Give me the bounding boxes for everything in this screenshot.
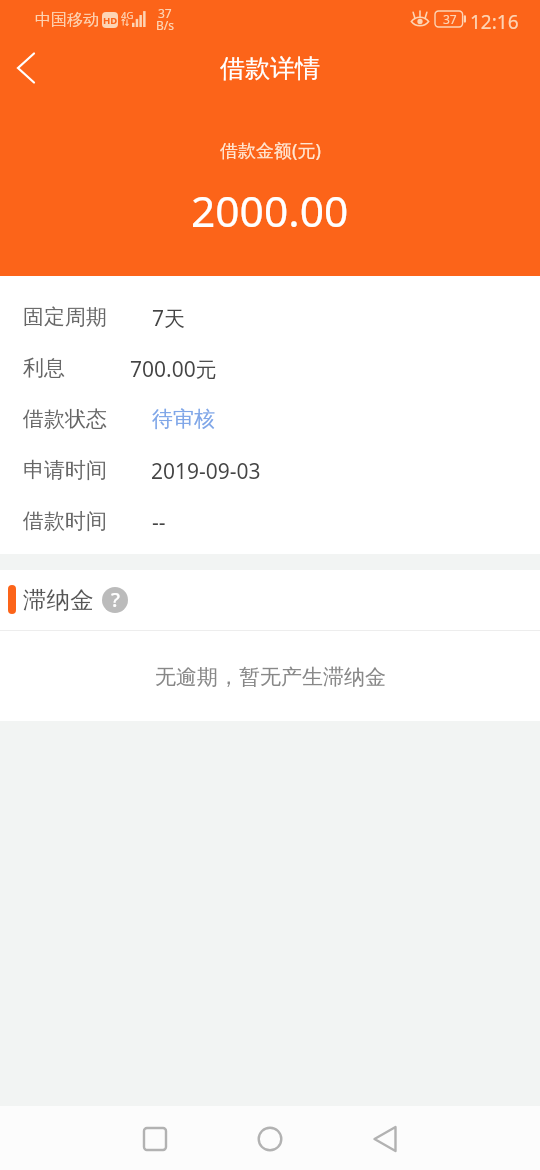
staticText: -- [152,508,166,537]
button[interactable]: Recent apps [132,1116,178,1162]
button[interactable]: 利息 [0,327,540,378]
staticText: 待审核 [152,406,215,432]
button[interactable]: 固定周期 [0,276,540,327]
staticText: B/s [156,17,175,33]
staticText: 借款详情 [220,53,320,84]
staticText: 中国移动 [35,10,99,30]
staticText: 37 [443,11,457,27]
button[interactable]: Back [362,1116,408,1162]
staticText: 2019-09-03 [151,457,261,486]
staticText: 利息 [23,355,65,381]
button[interactable]: What is a late fee [102,587,128,613]
staticText: 无逾期，暂无产生滞纳金 [155,664,386,690]
staticText: ? [111,587,120,612]
staticText: 37 [158,5,172,21]
staticText: 固定周期 [23,304,107,330]
button[interactable]: 申请时间 [0,429,540,480]
staticText: 申请时间 [23,457,107,483]
staticText: 滞纳金 [23,585,94,615]
staticText: 借款状态 [23,406,107,432]
staticText: HD [103,14,118,27]
staticText: 7天 [152,304,186,333]
staticText: 2000.00 [191,182,349,240]
staticText: 4G [121,9,134,22]
button[interactable]: Back [2,44,50,92]
button[interactable]: Home [247,1116,293,1162]
staticText: 12:16 [470,9,519,35]
staticText: 借款时间 [23,508,107,534]
staticText: 借款金额(元) [220,138,321,163]
staticText: 700.00元 [130,355,217,384]
button[interactable]: 借款状态 [0,378,540,429]
button[interactable]: 借款时间 [0,480,540,531]
